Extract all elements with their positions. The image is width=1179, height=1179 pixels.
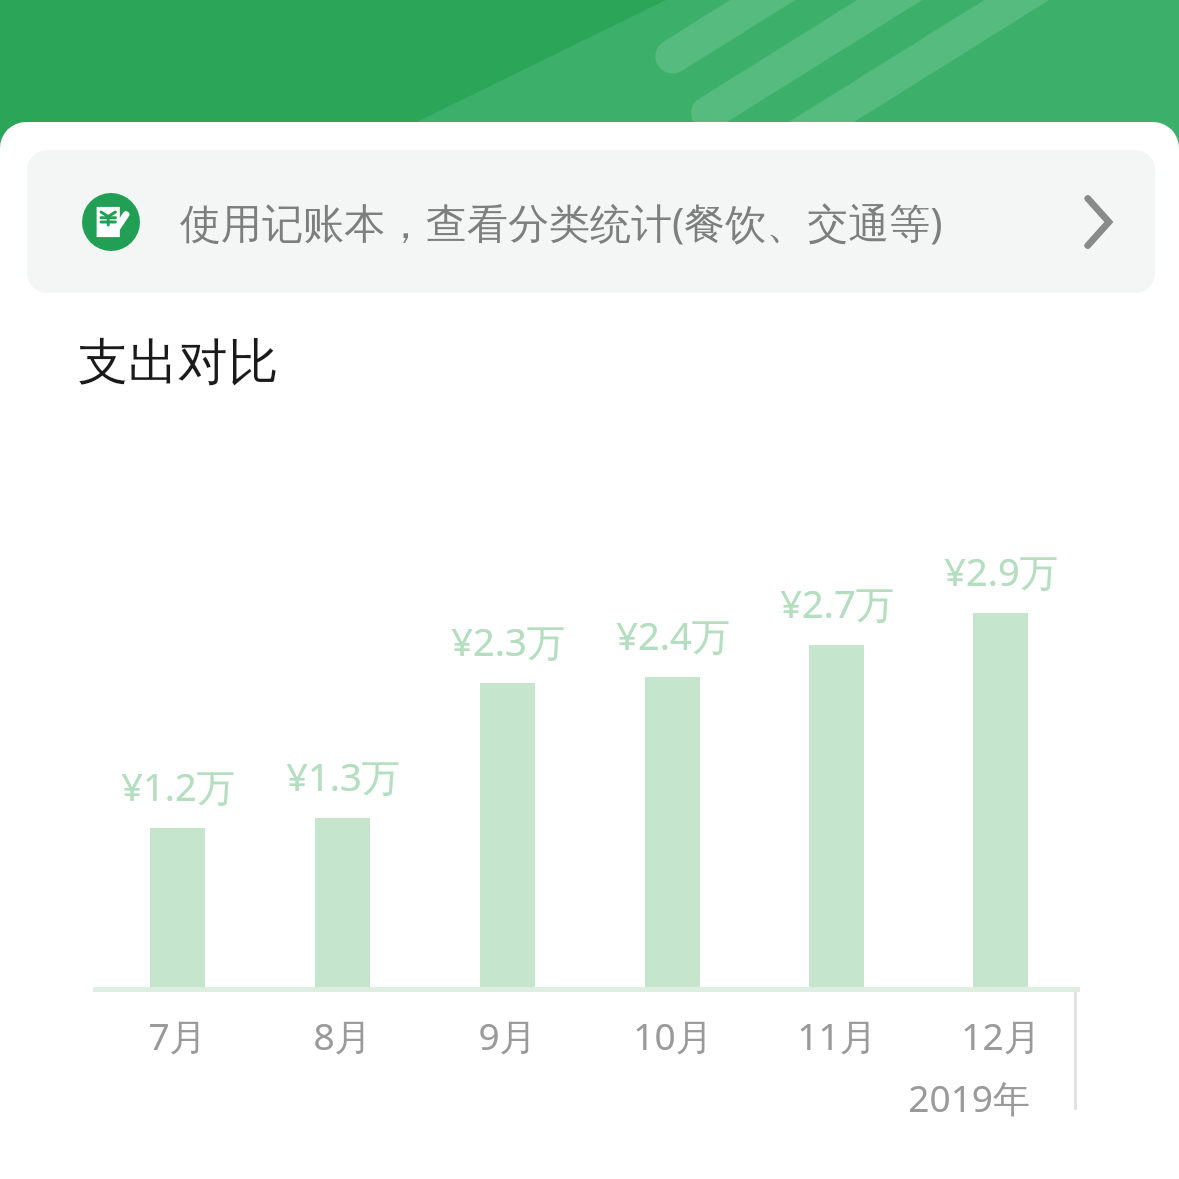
staticText: ¥2.3万 <box>451 615 565 667</box>
staticText: ¥2.4万 <box>616 609 730 661</box>
button[interactable]: 记账本 <box>27 150 1155 293</box>
staticText: 11月 <box>797 1010 877 1061</box>
staticText: ¥2.9万 <box>944 545 1058 597</box>
staticText: ¥2.7万 <box>780 577 894 629</box>
staticText: 7月 <box>148 1010 207 1061</box>
staticText: 使用记账本，查看分类统计(餐饮、交通等) <box>180 194 943 250</box>
staticText: ¥1.2万 <box>121 760 235 812</box>
staticText: 12月 <box>961 1010 1041 1061</box>
staticText: ¥1.3万 <box>286 750 400 802</box>
staticText: 2019年 <box>908 1072 1030 1123</box>
staticText: 支出对比 <box>78 331 278 394</box>
other: 查看分类统计 <box>1081 194 1115 250</box>
other: 记账本 <box>82 193 140 251</box>
staticText: 9月 <box>478 1010 537 1061</box>
staticText: 10月 <box>633 1010 713 1061</box>
staticText: 8月 <box>313 1010 372 1061</box>
